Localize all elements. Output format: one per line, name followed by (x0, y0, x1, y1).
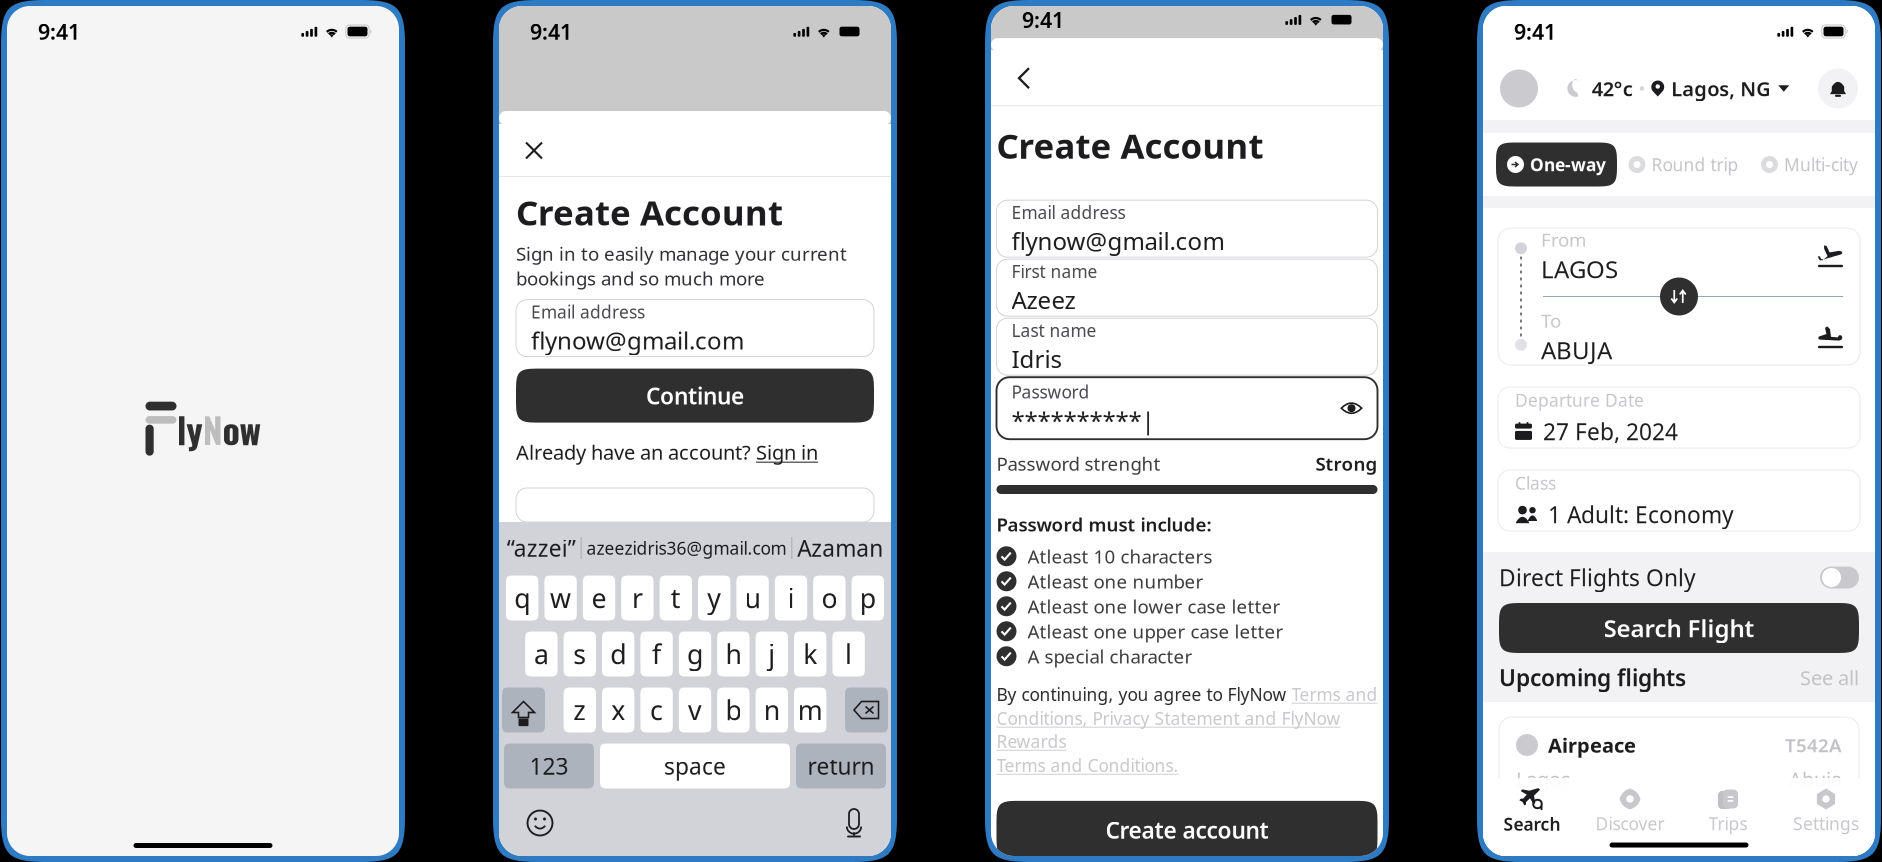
staticText: Azaman (797, 533, 883, 563)
button[interactable]: g (679, 631, 711, 676)
staticText: A special character (1027, 644, 1192, 669)
staticText: 9:41 (1022, 5, 1064, 34)
staticText: Password (1011, 380, 1089, 403)
staticText: Create account (1105, 815, 1268, 845)
staticText: 9:41 (1514, 17, 1556, 46)
button[interactable]: h (717, 631, 750, 676)
button[interactable]: One-way (1496, 142, 1617, 186)
button[interactable]: azeezidris36@gmail.com (586, 536, 786, 559)
staticText: Round trip (1651, 153, 1738, 176)
staticText: Atleast 10 characters (1027, 544, 1212, 569)
button[interactable]: Create account (996, 801, 1377, 859)
button[interactable]: Close (515, 131, 553, 169)
staticText: return (807, 751, 874, 781)
button[interactable]: Search (1489, 787, 1575, 835)
staticText: Settings (1793, 812, 1859, 835)
staticText: Email address (531, 300, 645, 323)
button[interactable]: v (679, 687, 711, 732)
button[interactable]: w (544, 575, 577, 620)
button[interactable]: j (756, 631, 788, 676)
button[interactable]: Round trip (1617, 142, 1749, 186)
button[interactable]: r (621, 575, 654, 620)
button[interactable]: Swap origin and destination (1660, 277, 1698, 315)
button[interactable]: d (602, 631, 634, 676)
button[interactable]: return (796, 743, 886, 788)
staticText: Last name (1011, 319, 1096, 342)
staticText: Atleast one upper case letter (1027, 619, 1283, 644)
button[interactable]: x (602, 687, 634, 732)
button[interactable]: f (640, 631, 673, 676)
staticText: u (745, 580, 761, 616)
button[interactable]: Direct flights only (1820, 566, 1859, 588)
button[interactable]: Notifications (1818, 68, 1858, 108)
button[interactable]: Password (996, 377, 1377, 439)
button[interactable]: Last name (996, 318, 1377, 375)
button[interactable]: n (756, 687, 788, 732)
button[interactable]: Email address (996, 200, 1377, 257)
staticText: w (550, 580, 571, 616)
button[interactable]: p (852, 575, 884, 620)
button[interactable]: u (736, 575, 769, 620)
button[interactable]: y (698, 575, 730, 620)
button[interactable]: Settings (1783, 787, 1869, 835)
button[interactable]: Search Flight (1499, 603, 1859, 653)
button[interactable]: Emoji (526, 809, 554, 837)
button[interactable]: Discover (1587, 787, 1673, 835)
staticText: p (860, 580, 876, 616)
button[interactable]: i (775, 575, 807, 620)
button[interactable]: Delete (845, 687, 888, 732)
button[interactable]: space (600, 743, 790, 788)
button[interactable]: Sign in (756, 439, 818, 465)
button[interactable]: “azzei” (507, 533, 576, 563)
button[interactable]: 123 (504, 743, 594, 788)
staticText: Create Account (516, 189, 783, 235)
button[interactable]: m (794, 687, 826, 732)
button[interactable]: e (583, 575, 615, 620)
button[interactable]: Dictation (844, 808, 864, 838)
button[interactable]: b (717, 687, 750, 732)
staticText: 27 Feb, 2024 (1543, 416, 1678, 447)
button[interactable]: Trips (1685, 787, 1771, 835)
button[interactable]: k (794, 631, 826, 676)
button[interactable]: s (564, 631, 596, 676)
staticText: Idris (1011, 343, 1061, 375)
button[interactable]: z (564, 687, 596, 732)
button[interactable]: Email address (516, 300, 874, 357)
staticText: Create Account (996, 122, 1263, 168)
staticText: First name (1011, 260, 1097, 283)
button[interactable]: Multi-city (1750, 142, 1869, 186)
button[interactable]: Back (1005, 59, 1043, 97)
button[interactable]: Azaman (797, 533, 883, 563)
button[interactable]: l (832, 631, 865, 676)
button[interactable]: c (640, 687, 673, 732)
button[interactable]: Shift (502, 687, 545, 732)
button[interactable]: Class (1498, 470, 1860, 531)
staticText: Atleast one lower case letter (1027, 594, 1280, 619)
staticText: Class (1515, 471, 1556, 494)
staticText: Lagos (1516, 766, 1571, 792)
staticText: s (573, 636, 586, 672)
staticText: Upcoming flights (1499, 662, 1686, 692)
staticText: azeezidris36@gmail.com (586, 536, 786, 559)
button[interactable]: Profile (1500, 69, 1538, 107)
staticText: i (787, 580, 794, 616)
button[interactable]: o (813, 575, 846, 620)
staticText: 123 (529, 751, 568, 781)
staticText: Email address (1011, 201, 1125, 224)
button[interactable]: Continue (516, 369, 874, 423)
button[interactable]: Departure Date (1498, 387, 1860, 448)
button[interactable]: See all (1800, 664, 1859, 691)
staticText: y (707, 580, 721, 616)
staticText: 1 Adult: Economy (1548, 499, 1734, 530)
button[interactable]: q (506, 575, 538, 620)
staticText: e (591, 580, 606, 616)
staticText: space (664, 751, 726, 781)
staticText: Trips (1708, 812, 1747, 835)
staticText: a (534, 636, 549, 672)
staticText: Atleast one number (1027, 569, 1203, 594)
staticText: q (514, 580, 530, 616)
button[interactable]: a (525, 631, 558, 676)
button[interactable]: t (660, 575, 692, 620)
staticText: k (803, 636, 817, 672)
button[interactable]: First name (996, 259, 1377, 316)
